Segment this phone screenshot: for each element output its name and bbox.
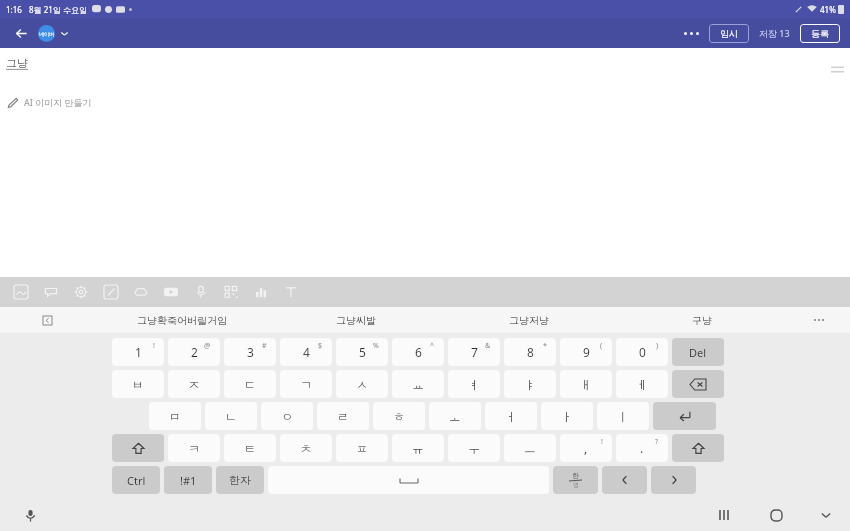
button[interactable]: ㄱ: [280, 370, 332, 398]
button[interactable]: ㅋ: [168, 434, 220, 462]
button[interactable]: ㅁ: [149, 402, 201, 430]
staticText: 등록: [811, 28, 829, 39]
button[interactable]: 그냥씨발: [269, 307, 442, 333]
button[interactable]: 9: [560, 338, 612, 366]
button[interactable]: 그냥저냥: [442, 307, 615, 333]
staticText: ㅌ: [244, 441, 256, 456]
button[interactable]: !#1: [164, 466, 212, 494]
button[interactable]: Menu: [824, 56, 850, 82]
staticText: ㅓ: [505, 409, 517, 424]
staticText: ㅔ: [636, 377, 648, 392]
button[interactable]: Space: [268, 466, 549, 494]
button[interactable]: More suggestions: [788, 307, 850, 333]
button[interactable]: More options: [679, 22, 703, 44]
button[interactable]: ㅌ: [224, 434, 276, 462]
button[interactable]: ㅛ: [392, 370, 444, 398]
staticText: Del: [689, 345, 707, 360]
button[interactable]: ㅠ: [392, 434, 444, 462]
staticText: $: [318, 341, 323, 351]
button[interactable]: 2: [168, 338, 220, 366]
button[interactable]: 4: [280, 338, 332, 366]
staticText: !#1: [180, 473, 197, 488]
button[interactable]: 그냥확죽어버릴거임: [95, 307, 269, 333]
staticText: 3: [247, 344, 254, 360]
button[interactable]: 0: [616, 338, 668, 366]
button[interactable]: Cloud: [126, 277, 156, 307]
button[interactable]: Voice input: [0, 499, 60, 531]
button[interactable]: ,: [560, 434, 612, 462]
staticText: ): [656, 341, 659, 351]
button[interactable]: ㅏ: [541, 402, 593, 430]
staticText: 0: [639, 344, 646, 360]
staticText: ㅕ: [468, 377, 480, 392]
staticText: ㅍ: [356, 441, 368, 456]
button[interactable]: Place: [66, 277, 96, 307]
button[interactable]: Chart: [246, 277, 276, 307]
staticText: 그냥: [6, 56, 28, 70]
button[interactable]: ㅍ: [336, 434, 388, 462]
staticText: !: [153, 341, 155, 351]
staticText: 7: [471, 344, 478, 360]
button[interactable]: ㅂ: [112, 370, 164, 398]
button[interactable]: 임시: [709, 24, 749, 43]
button[interactable]: ㅑ: [504, 370, 556, 398]
button[interactable]: Language: [553, 466, 598, 494]
button[interactable]: ㅓ: [485, 402, 537, 430]
button[interactable]: 6: [392, 338, 444, 366]
button[interactable]: Video: [156, 277, 186, 307]
staticText: 6: [415, 344, 422, 360]
button[interactable]: Recent apps: [698, 499, 750, 531]
button[interactable]: 저장 13: [757, 27, 792, 39]
button[interactable]: ㅎ: [373, 402, 425, 430]
button[interactable]: 1: [112, 338, 164, 366]
button[interactable]: ㅡ: [504, 434, 556, 462]
button[interactable]: ㅊ: [280, 434, 332, 462]
button[interactable]: Voice: [186, 277, 216, 307]
button[interactable]: 8: [504, 338, 556, 366]
button[interactable]: Enter: [653, 402, 716, 430]
button[interactable]: ㅈ: [168, 370, 220, 398]
button[interactable]: ㅇ: [261, 402, 313, 430]
button[interactable]: 5: [336, 338, 388, 366]
button[interactable]: Home: [750, 499, 802, 531]
button[interactable]: Left: [602, 466, 647, 494]
button[interactable]: Right: [651, 466, 696, 494]
button[interactable]: Draw: [96, 277, 126, 307]
button[interactable]: 7: [448, 338, 500, 366]
button[interactable]: Previous: [0, 307, 95, 333]
button[interactable]: QR: [216, 277, 246, 307]
button[interactable]: AI 이미지 만들기: [7, 96, 92, 108]
button[interactable]: ㅣ: [597, 402, 649, 430]
staticText: 2: [191, 344, 198, 360]
button[interactable]: ㅗ: [429, 402, 481, 430]
button[interactable]: Backspace: [672, 370, 724, 398]
button[interactable]: ㄷ: [224, 370, 276, 398]
button[interactable]: 등록: [800, 24, 840, 43]
button[interactable]: ㅐ: [560, 370, 612, 398]
staticText: 4: [303, 344, 310, 360]
button[interactable]: ㅕ: [448, 370, 500, 398]
button[interactable]: Back: [10, 22, 32, 44]
button[interactable]: 구냥: [615, 307, 788, 333]
button[interactable]: Shift: [112, 434, 164, 462]
button[interactable]: Hide keyboard: [802, 499, 850, 531]
button[interactable]: 한자: [216, 466, 264, 494]
button[interactable]: Shift: [672, 434, 724, 462]
staticText: 8: [527, 344, 534, 360]
button[interactable]: Text: [276, 277, 306, 307]
button[interactable]: Sticker: [36, 277, 66, 307]
button[interactable]: Ctrl: [112, 466, 160, 494]
button[interactable]: Image: [6, 277, 36, 307]
button[interactable]: ㅔ: [616, 370, 668, 398]
button[interactable]: ㅅ: [336, 370, 388, 398]
button[interactable]: ㄹ: [317, 402, 369, 430]
button[interactable]: Del: [672, 338, 724, 366]
button[interactable]: 3: [224, 338, 276, 366]
staticText: ㄴ: [225, 409, 237, 424]
staticText: ㅛ: [412, 377, 424, 392]
button[interactable]: 네이버: [38, 25, 69, 42]
staticText: ㅇ: [281, 409, 293, 424]
button[interactable]: ㄴ: [205, 402, 257, 430]
button[interactable]: .: [616, 434, 668, 462]
button[interactable]: ㅜ: [448, 434, 500, 462]
